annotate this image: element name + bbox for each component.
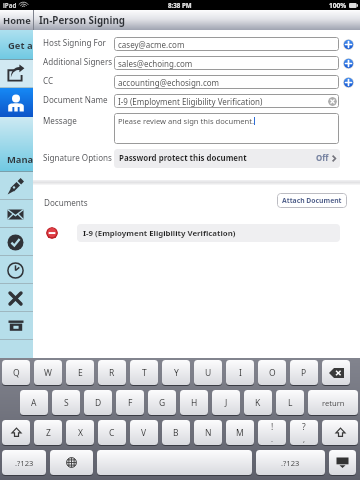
button[interactable]: B <box>162 420 190 445</box>
button[interactable]: accounting@echosign.com <box>114 75 339 89</box>
button[interactable]: M <box>226 420 254 445</box>
staticText: accounting@echosign.com <box>118 77 220 88</box>
staticText: Additional Signers <box>43 56 113 67</box>
button[interactable]: .?123 <box>256 450 325 475</box>
button[interactable] <box>2 420 30 445</box>
button[interactable]: T <box>130 360 158 385</box>
staticText: Password protect this document <box>119 153 247 164</box>
button[interactable] <box>97 450 252 475</box>
staticText: B <box>173 427 179 439</box>
button[interactable]: Please review and sign this document. <box>114 113 339 144</box>
button[interactable]: C <box>98 420 126 445</box>
button[interactable]: Z <box>34 420 62 445</box>
button[interactable]: Add recipient <box>343 58 354 69</box>
button[interactable] <box>322 360 350 385</box>
staticText: R <box>109 367 115 379</box>
staticText: Attach Document <box>282 196 342 205</box>
button[interactable] <box>0 284 33 312</box>
staticText: iPad <box>3 1 17 9</box>
button[interactable]: Get a <box>0 30 33 60</box>
button[interactable]: D <box>84 390 112 415</box>
button[interactable]: Y <box>162 360 190 385</box>
button[interactable]: Mana <box>0 117 33 172</box>
button[interactable] <box>322 420 358 445</box>
staticText: Y <box>174 367 179 379</box>
staticText: I-9 (Employment Eligibility Verification… <box>118 96 263 107</box>
button[interactable]: X <box>66 420 94 445</box>
staticText: Please review and sign this document. <box>118 116 254 126</box>
button[interactable]: S <box>52 390 80 415</box>
staticText: Host Signing For <box>43 37 106 48</box>
staticText: 8:38 PM <box>168 1 192 9</box>
button[interactable]: Q <box>2 360 30 385</box>
button[interactable]: Add recipient <box>343 39 354 50</box>
button[interactable]: Password protect this document <box>114 149 340 168</box>
button[interactable]: Clear text <box>328 97 337 106</box>
button[interactable]: K <box>244 390 272 415</box>
staticText: H <box>191 397 198 409</box>
button[interactable]: Home <box>0 10 33 30</box>
button[interactable]: ! <box>258 420 286 445</box>
button[interactable]: J <box>212 390 240 415</box>
button[interactable]: Add recipient <box>343 77 354 88</box>
staticText: I-9 (Employment Eligibility Verification… <box>83 228 236 239</box>
staticText: I <box>239 367 242 379</box>
staticText: T <box>142 367 147 379</box>
staticText: F <box>128 397 133 409</box>
staticText: N <box>205 427 212 439</box>
staticText: W <box>44 367 52 379</box>
staticText: Get a <box>8 39 33 52</box>
button[interactable]: I-9 (Employment Eligibility Verification… <box>77 224 340 242</box>
button[interactable] <box>329 450 356 475</box>
button[interactable] <box>0 228 33 256</box>
button[interactable]: N <box>194 420 222 445</box>
staticText: ? <box>302 421 306 433</box>
button[interactable]: R <box>98 360 126 385</box>
button[interactable] <box>0 88 33 117</box>
button[interactable]: P <box>290 360 318 385</box>
button[interactable]: I-9 (Employment Eligibility Verification… <box>114 94 339 108</box>
staticText: U <box>205 367 212 379</box>
button[interactable] <box>0 200 33 228</box>
button[interactable]: sales@echoing.com <box>114 56 339 70</box>
staticText: Q <box>13 367 20 379</box>
button[interactable]: O <box>258 360 286 385</box>
staticText: A <box>31 397 37 409</box>
staticText: C <box>109 427 115 439</box>
button[interactable]: G <box>148 390 176 415</box>
button[interactable]: Remove document <box>46 227 58 239</box>
staticText: Off <box>316 153 329 164</box>
button[interactable]: U <box>194 360 222 385</box>
button[interactable]: .?123 <box>2 450 46 475</box>
staticText: Home <box>3 14 31 27</box>
button[interactable]: V <box>130 420 158 445</box>
button[interactable] <box>50 450 93 475</box>
button[interactable]: return <box>308 390 358 415</box>
staticText: .?123 <box>281 458 300 468</box>
staticText: .?123 <box>15 458 34 468</box>
button[interactable]: H <box>180 390 208 415</box>
button[interactable] <box>0 256 33 284</box>
button[interactable] <box>0 312 33 340</box>
staticText: K <box>255 397 261 409</box>
staticText: M <box>236 427 244 439</box>
staticText: Documents <box>44 197 88 208</box>
button[interactable] <box>0 60 33 88</box>
button[interactable]: casey@acme.com <box>114 37 339 51</box>
button[interactable]: Attach Document <box>277 193 347 208</box>
staticText: L <box>288 397 293 409</box>
button[interactable]: A <box>20 390 48 415</box>
staticText: casey@acme.com <box>118 39 185 50</box>
button[interactable]: F <box>116 390 144 415</box>
button[interactable]: I <box>226 360 254 385</box>
staticText: G <box>159 397 166 409</box>
button[interactable] <box>0 172 33 200</box>
staticText: P <box>301 367 307 379</box>
button[interactable]: W <box>34 360 62 385</box>
staticText: Mana <box>7 153 34 166</box>
button[interactable]: ? <box>290 420 318 445</box>
staticText: ! <box>271 421 274 433</box>
button[interactable]: E <box>66 360 94 385</box>
staticText: Z <box>46 427 51 439</box>
button[interactable]: L <box>276 390 304 415</box>
